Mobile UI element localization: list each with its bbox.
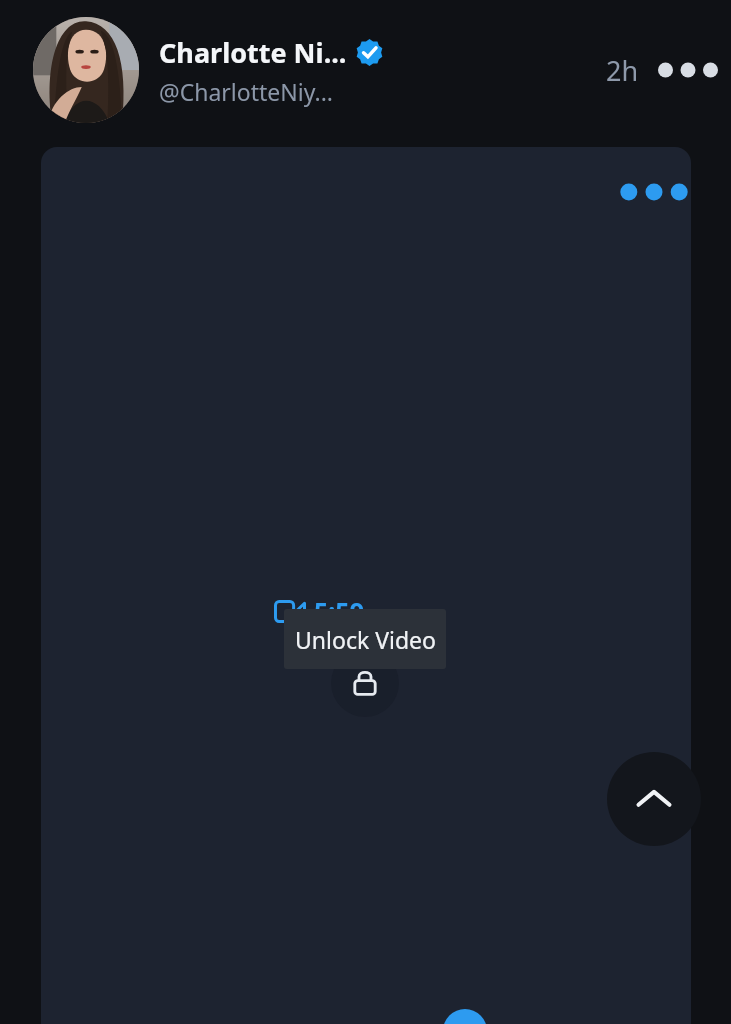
button[interactable]: 5:59 xyxy=(274,594,364,628)
staticText: Unlock Video xyxy=(295,624,436,655)
button[interactable]: Scroll to top xyxy=(607,752,701,846)
button[interactable]: Charlotte Ni... xyxy=(0,0,731,140)
staticText: Charlotte Ni... xyxy=(159,34,347,71)
staticText: 5:59 xyxy=(314,594,364,628)
button[interactable]: Unlock video xyxy=(331,649,399,717)
staticText: @CharlotteNiy... xyxy=(159,76,333,107)
button[interactable]: Unlock Video xyxy=(284,609,446,669)
button[interactable]: Video options xyxy=(629,167,679,217)
button[interactable]: More options xyxy=(665,47,711,93)
staticText: 2h xyxy=(606,52,639,89)
button[interactable]: Video options xyxy=(41,147,691,1024)
